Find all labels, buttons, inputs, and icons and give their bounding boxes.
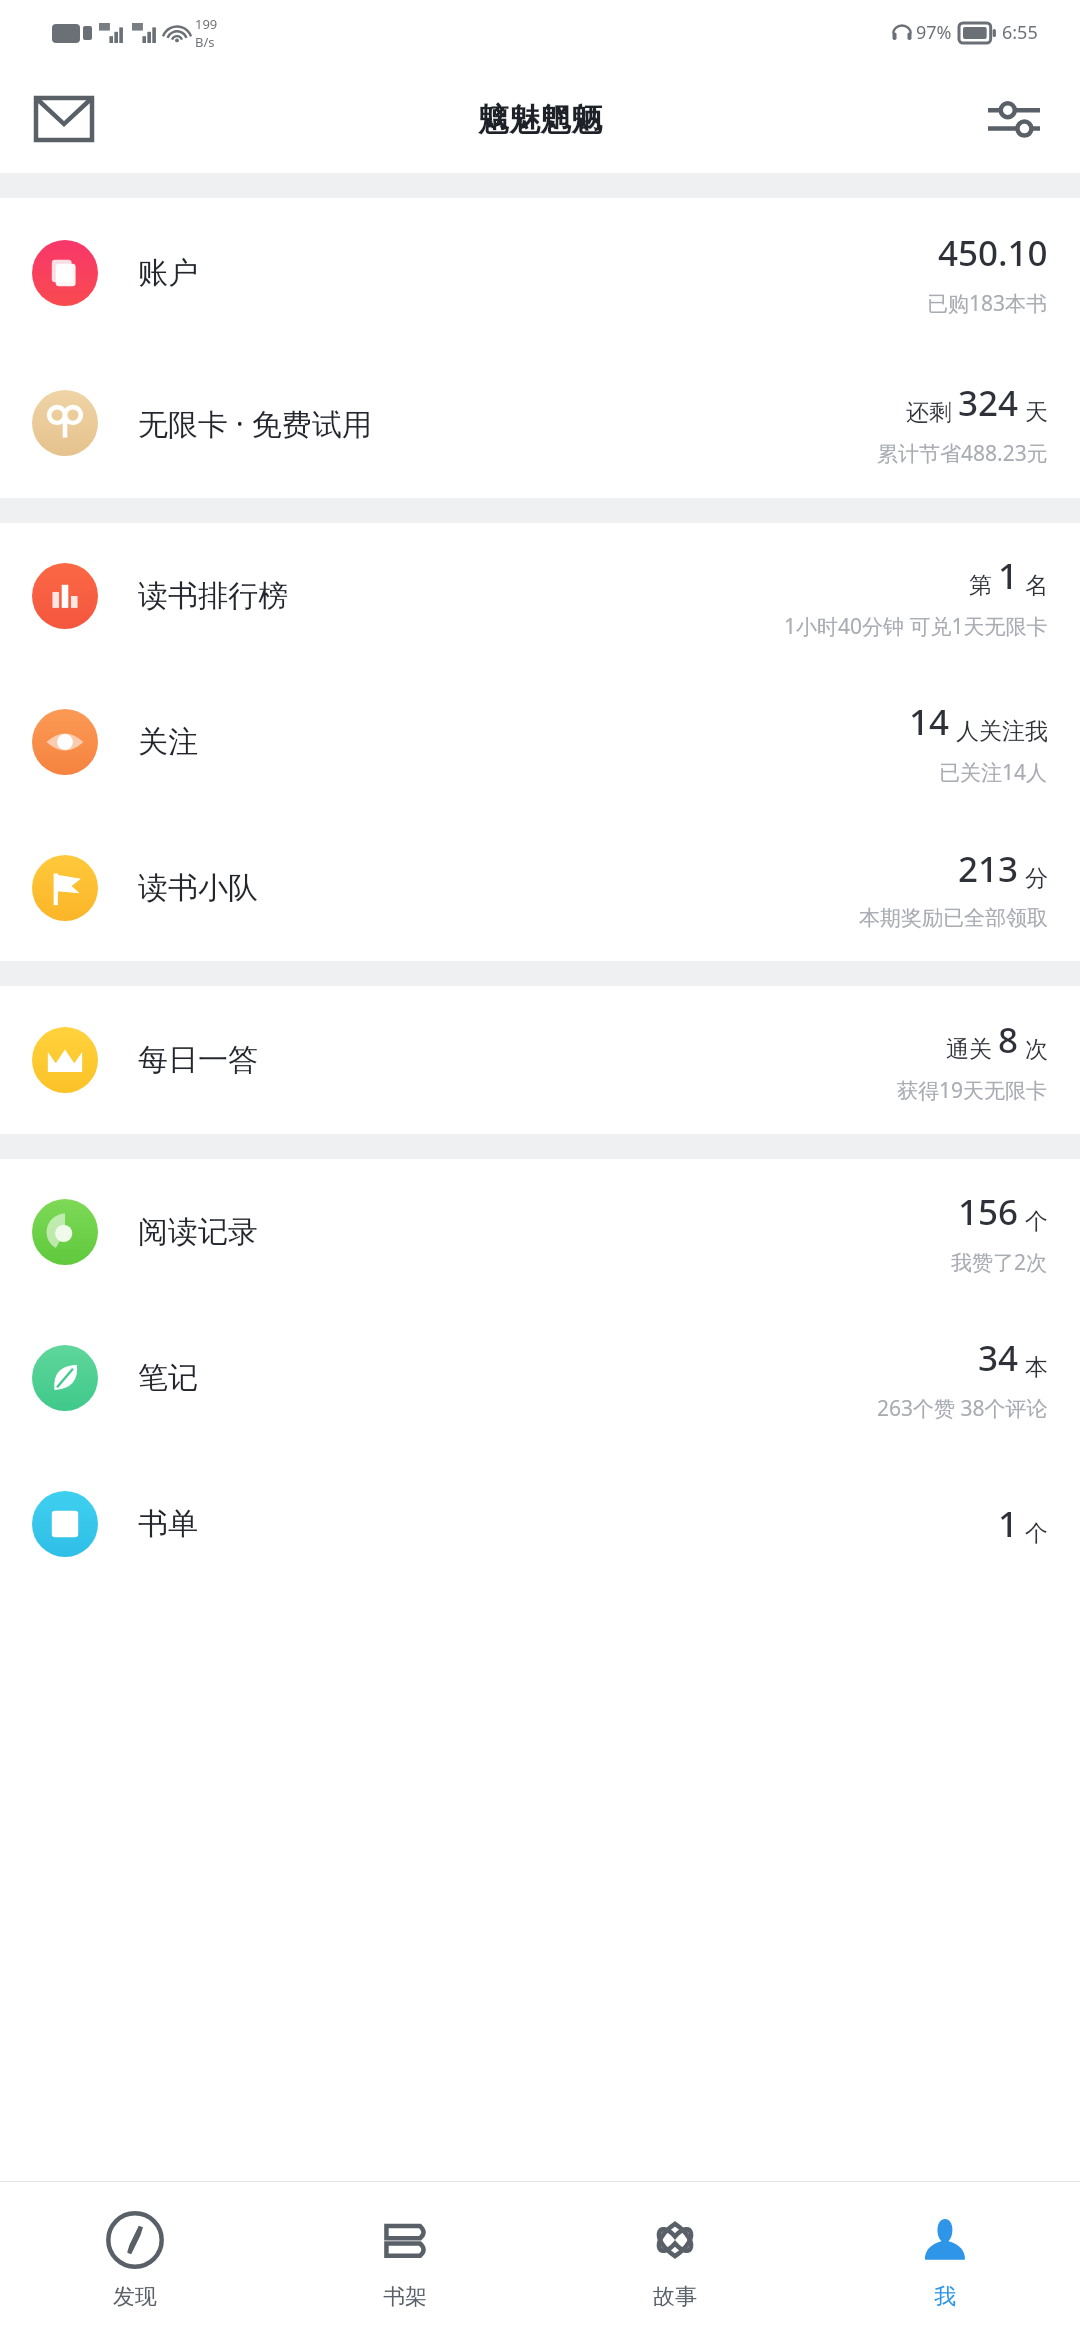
staticText: 书单	[138, 1505, 198, 1543]
staticText: 6:55	[1002, 20, 1038, 45]
staticText: 关注	[138, 723, 198, 761]
staticText: 还剩	[906, 398, 952, 427]
staticText: 个	[1025, 1207, 1048, 1236]
staticText: 1小时40分钟 可兑1天无限卡	[784, 612, 1048, 641]
button[interactable]: 笔记	[0, 1305, 1080, 1451]
button[interactable]: 书架	[270, 2182, 540, 2340]
button[interactable]: 书单	[0, 1451, 1080, 1597]
staticText: 324	[958, 379, 1019, 427]
staticText: 故事	[653, 2283, 697, 2311]
button[interactable]: 每日一答	[0, 986, 1080, 1134]
staticText: 人关注我	[956, 717, 1048, 746]
button[interactable]: 阅读记录	[0, 1159, 1080, 1305]
button[interactable]: 发现	[0, 2182, 270, 2340]
staticText: 账户	[138, 254, 198, 292]
button[interactable]: 账户	[0, 198, 1080, 348]
staticText: 本	[1025, 1353, 1048, 1382]
staticText: 已购183本书	[927, 289, 1048, 318]
staticText: 263个赞 38个评论	[877, 1394, 1048, 1423]
staticText: 14	[909, 698, 950, 746]
staticText: 获得19天无限卡	[897, 1076, 1048, 1105]
staticText: 我赞了2次	[951, 1248, 1048, 1277]
staticText: 发现	[113, 2283, 157, 2311]
staticText: 天	[1025, 398, 1048, 427]
staticText: 97%	[916, 20, 952, 45]
staticText: 每日一答	[138, 1041, 258, 1079]
staticText: 已关注14人	[939, 758, 1048, 787]
button[interactable]: 关注	[0, 669, 1080, 815]
staticText: 8	[998, 1016, 1019, 1064]
button[interactable]: 无限卡 · 免费试用	[0, 348, 1080, 498]
button[interactable]: 故事	[540, 2182, 810, 2340]
button[interactable]: 读书排行榜	[0, 523, 1080, 669]
staticText: 读书排行榜	[138, 577, 288, 615]
staticText: 199	[195, 15, 218, 33]
staticText: 分	[1025, 864, 1048, 893]
staticText: 第	[969, 571, 992, 600]
staticText: 读书小队	[138, 869, 258, 907]
staticText: 213	[958, 845, 1019, 893]
staticText: 笔记	[138, 1359, 198, 1397]
staticText: 书架	[383, 2283, 427, 2311]
staticText: 450.10	[938, 229, 1048, 277]
staticText: 1	[998, 1500, 1019, 1548]
button[interactable]: 我	[810, 2182, 1080, 2340]
staticText: 魑魅魍魉	[478, 100, 602, 139]
button[interactable]: Messages	[28, 83, 100, 155]
staticText: 次	[1025, 1035, 1048, 1064]
staticText: 本期奖励已全部领取	[859, 905, 1048, 931]
staticText: 名	[1025, 571, 1048, 600]
staticText: 156	[958, 1188, 1019, 1236]
staticText: 我	[934, 2283, 956, 2311]
button[interactable]: 读书小队	[0, 815, 1080, 961]
staticText: 通关	[946, 1035, 992, 1064]
staticText: 阅读记录	[138, 1213, 258, 1251]
staticText: 34	[978, 1334, 1019, 1382]
staticText: 个	[1025, 1519, 1048, 1548]
button[interactable]: Settings	[978, 83, 1050, 155]
staticText: B/s	[195, 33, 215, 51]
staticText: 1	[998, 552, 1019, 600]
staticText: 累计节省488.23元	[877, 439, 1048, 468]
staticText: 无限卡 · 免费试用	[138, 403, 372, 444]
